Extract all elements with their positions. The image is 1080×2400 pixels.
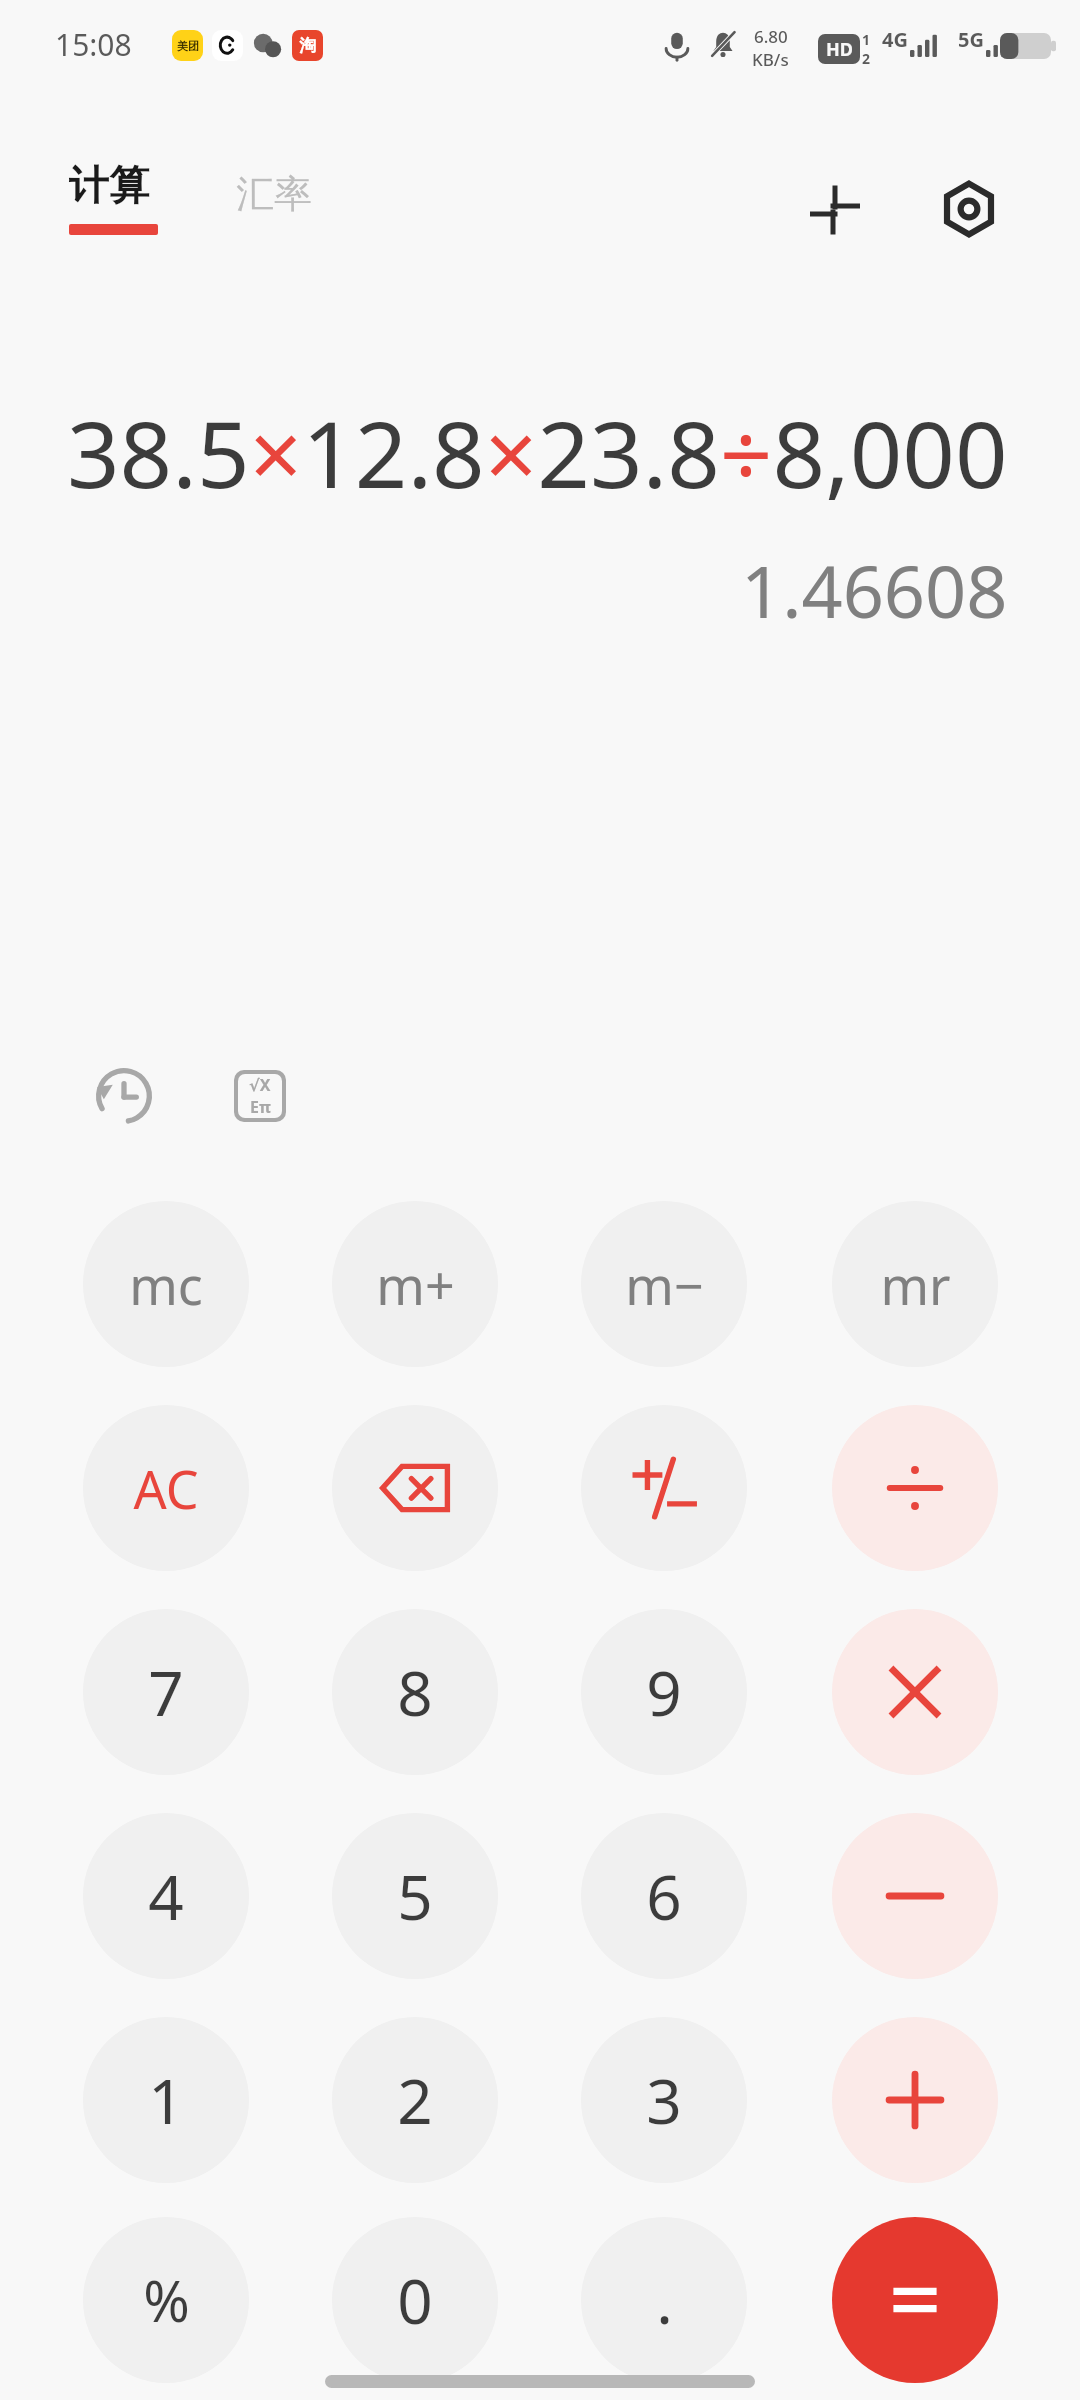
button[interactable]: 3 xyxy=(581,2017,747,2183)
staticText: 5G xyxy=(958,26,984,53)
button[interactable]: Plus minus xyxy=(581,1405,747,1571)
staticText: 1 xyxy=(862,30,871,49)
staticText: HD xyxy=(826,37,853,62)
staticText: m− xyxy=(625,1249,704,1320)
button[interactable]: % xyxy=(83,2217,249,2383)
button[interactable]: mc xyxy=(83,1201,249,1367)
staticText: . xyxy=(656,2258,673,2342)
staticText: 2 xyxy=(862,49,871,68)
button[interactable]: 5 xyxy=(332,1813,498,1979)
button[interactable]: . xyxy=(581,2217,747,2383)
staticText: 4 xyxy=(148,1854,184,1938)
staticText: √X xyxy=(249,1074,271,1096)
staticText: 5 xyxy=(397,1854,433,1938)
button[interactable]: Plus xyxy=(832,2017,998,2183)
button[interactable]: 7 xyxy=(83,1609,249,1775)
button[interactable]: 2 xyxy=(332,2017,498,2183)
button[interactable]: 9 xyxy=(581,1609,747,1775)
staticText: 7 xyxy=(148,1650,184,1734)
button[interactable]: mr xyxy=(832,1201,998,1367)
staticText: AC xyxy=(133,1453,199,1524)
staticText: 0 xyxy=(397,2258,433,2342)
staticText: 4G xyxy=(882,26,908,53)
staticText: 1 xyxy=(148,2058,184,2142)
button[interactable]: Equals xyxy=(832,2217,998,2383)
button[interactable]: Scientific mode xyxy=(214,1050,306,1142)
staticText: 美团 xyxy=(177,39,199,53)
staticText: 15:08 xyxy=(55,24,132,65)
button[interactable]: m+ xyxy=(332,1201,498,1367)
staticText: 淘 xyxy=(299,35,316,56)
button[interactable]: 1 xyxy=(83,2017,249,2183)
button[interactable]: 0 xyxy=(332,2217,498,2383)
button[interactable]: 6 xyxy=(581,1813,747,1979)
staticText: mr xyxy=(880,1249,951,1320)
staticText: mc xyxy=(129,1249,203,1320)
button[interactable]: Divide xyxy=(832,1405,998,1571)
staticText: Eπ xyxy=(250,1096,271,1118)
staticText: KB/s xyxy=(752,48,789,71)
button[interactable]: m− xyxy=(581,1201,747,1367)
staticText: 6.80 xyxy=(754,25,788,48)
staticText: 6 xyxy=(646,1854,682,1938)
button[interactable]: 汇率 xyxy=(222,160,326,228)
staticText: 38.5×12.8×23.8÷8,000 xyxy=(67,390,1008,515)
button[interactable]: Collapse keypad xyxy=(795,168,875,248)
staticText: 1.46608 xyxy=(741,541,1008,639)
staticText: 计算 xyxy=(69,160,149,210)
staticText: 2 xyxy=(397,2058,433,2142)
button[interactable]: 4 xyxy=(83,1813,249,1979)
staticText: 9 xyxy=(646,1650,682,1734)
button[interactable]: 8 xyxy=(332,1609,498,1775)
button[interactable]: History xyxy=(78,1050,170,1142)
button[interactable]: Backspace xyxy=(332,1405,498,1571)
staticText: m+ xyxy=(376,1249,455,1320)
button[interactable]: 计算 xyxy=(55,150,172,245)
button[interactable]: AC xyxy=(83,1405,249,1571)
staticText: 汇率 xyxy=(236,170,312,218)
staticText: 3 xyxy=(646,2058,682,2142)
button[interactable]: Settings xyxy=(928,168,1010,250)
button[interactable]: Minus xyxy=(832,1813,998,1979)
staticText: 8 xyxy=(397,1650,433,1734)
staticText: % xyxy=(143,2262,190,2338)
button[interactable]: Multiply xyxy=(832,1609,998,1775)
